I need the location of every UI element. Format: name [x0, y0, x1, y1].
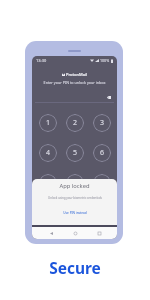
staticText: 9	[100, 178, 105, 188]
button[interactable]: 4	[39, 144, 57, 162]
staticText: 4	[46, 148, 51, 158]
staticText: 8	[73, 178, 78, 188]
button[interactable]: 5	[66, 144, 84, 162]
staticText: Enter your PIN to unlock your inbox	[32, 80, 117, 85]
staticText: Unlock using your biometric credentials	[48, 196, 102, 200]
button[interactable]: 9	[93, 174, 111, 192]
button[interactable]: 8	[66, 174, 84, 192]
staticText: 7	[46, 178, 51, 188]
staticText: 3	[100, 118, 105, 128]
staticText: ProtonMail	[66, 72, 88, 77]
staticText: Secure	[0, 257, 150, 278]
button[interactable]: 2	[66, 114, 84, 132]
staticText: 6	[100, 148, 105, 158]
staticText: 5	[73, 148, 78, 158]
button[interactable]: Back	[46, 228, 56, 238]
staticText: 2	[73, 118, 78, 128]
button[interactable]: Recent apps	[94, 228, 104, 238]
staticText: Use PIN instead	[63, 211, 87, 215]
button[interactable]: 3	[93, 114, 111, 132]
button[interactable]: 1	[39, 114, 57, 132]
staticText: 1	[46, 118, 51, 128]
staticText: 100%	[100, 58, 110, 63]
button[interactable]: Home	[70, 228, 80, 238]
button[interactable]: 7	[39, 174, 57, 192]
staticText: 13:30	[36, 58, 47, 63]
button[interactable]: 6	[93, 144, 111, 162]
staticText: App locked	[59, 182, 90, 190]
button[interactable]: Use PIN instead	[59, 210, 91, 216]
